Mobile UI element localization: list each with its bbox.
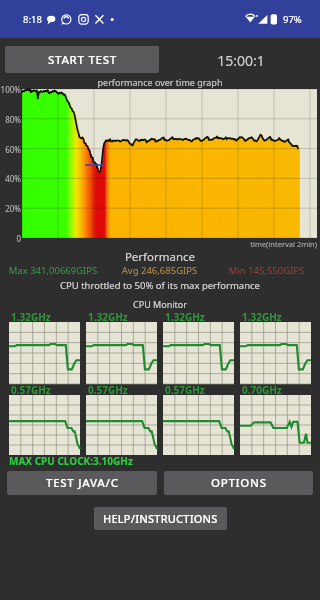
staticText: 97%	[283, 13, 302, 26]
staticText: 0	[0, 233, 21, 244]
staticText: 1.32GHz	[242, 310, 282, 324]
staticText: TEST JAVA/C	[46, 475, 119, 491]
staticText: OPTIONS	[211, 475, 267, 491]
button[interactable]: HELP/INSTRUCTIONS	[94, 507, 227, 530]
staticText: CPU Monitor	[0, 298, 320, 310]
staticText: 0.57GHz	[165, 383, 205, 397]
staticText: 1.32GHz	[88, 310, 128, 324]
staticText: 1.32GHz	[11, 310, 51, 324]
button[interactable]: START TEST	[5, 46, 159, 73]
staticText: Max 341,00669GIPS	[0, 264, 106, 277]
staticText: Performance	[0, 249, 320, 265]
staticText: 0.70GHz	[242, 383, 282, 397]
staticText: START TEST	[48, 52, 117, 68]
staticText: performance over time graph	[0, 76, 320, 88]
staticText: 8:18	[23, 13, 42, 26]
staticText: CPU throttled to 50% of its max performa…	[0, 279, 320, 292]
staticText: MAX CPU CLOCK:3.10GHz	[9, 454, 133, 468]
staticText: 0.57GHz	[88, 383, 128, 397]
staticText: 20%	[0, 203, 21, 214]
staticText: time(interval 2min)	[0, 239, 317, 249]
button[interactable]: TEST JAVA/C	[7, 471, 157, 495]
staticText: 80%	[0, 114, 21, 125]
staticText: 0.57GHz	[11, 383, 51, 397]
staticText: 40%	[0, 173, 21, 184]
staticText: 1.32GHz	[165, 310, 205, 324]
staticText: Min 145,550GIPS	[213, 264, 320, 277]
staticText: 15:00:1	[191, 51, 291, 70]
staticText: HELP/INSTRUCTIONS	[103, 511, 218, 526]
staticText: Avg 246,685GIPS	[106, 264, 213, 277]
staticText: 100%	[0, 84, 21, 95]
staticText: 60%	[0, 144, 21, 155]
button[interactable]: OPTIONS	[164, 471, 313, 495]
